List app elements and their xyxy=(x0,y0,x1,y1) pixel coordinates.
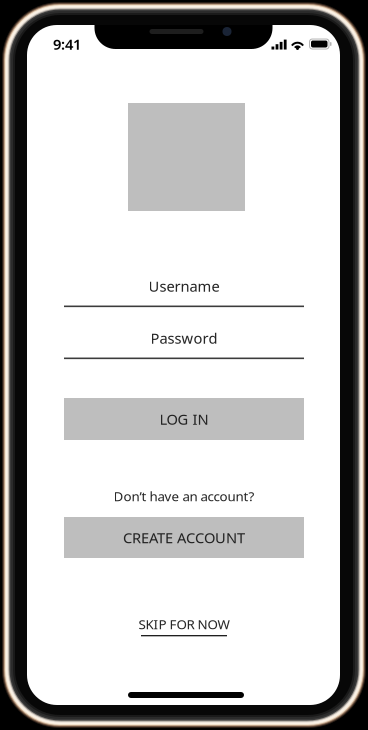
staticText: LOG IN xyxy=(159,409,208,429)
button[interactable]: SKIP FOR NOW xyxy=(64,612,304,640)
button[interactable]: CREATE ACCOUNT xyxy=(64,517,304,558)
button[interactable]: Username xyxy=(64,277,304,311)
button[interactable]: LOG IN xyxy=(64,398,304,440)
staticText: Password xyxy=(150,328,217,348)
staticText: 9:41 xyxy=(53,34,81,54)
staticText: Don’t have an account? xyxy=(113,487,254,505)
staticText: CREATE ACCOUNT xyxy=(123,528,245,547)
staticText: Username xyxy=(148,276,219,296)
button[interactable]: Password xyxy=(64,329,304,363)
staticText: SKIP FOR NOW xyxy=(138,615,229,633)
